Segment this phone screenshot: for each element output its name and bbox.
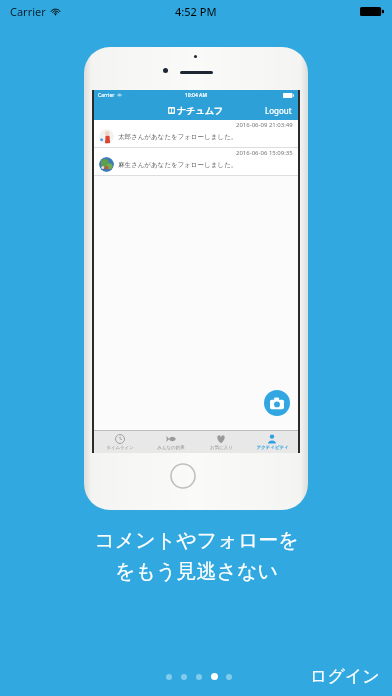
- staticText: アクティビティ: [256, 445, 289, 451]
- button[interactable]: お気に入り: [196, 433, 246, 452]
- staticText: ログイン: [310, 666, 380, 687]
- button[interactable]: Logout: [259, 102, 298, 119]
- staticText: 10:04 AM: [185, 92, 207, 99]
- staticText: 太郎さんがあなたをフォローしました。: [118, 133, 238, 141]
- staticText: をもう見逃さない: [115, 559, 278, 584]
- staticText: 2016-06-09 21:03:49: [236, 121, 293, 129]
- button[interactable]: 2016-06-06 15:09:35: [94, 148, 298, 176]
- staticText: お気に入り: [210, 445, 233, 451]
- staticText: タイムライン: [106, 445, 134, 451]
- button[interactable]: ログイン: [302, 662, 392, 691]
- button[interactable]: みんなの釣果: [146, 433, 196, 452]
- staticText: Logout: [265, 105, 292, 116]
- staticText: コメントやフォローを: [94, 528, 299, 553]
- staticText: 麻生さんがあなたをフォローしました。: [118, 161, 238, 169]
- button[interactable]: 2016-06-09 21:03:49: [94, 120, 298, 148]
- staticText: Carrier: [10, 4, 46, 19]
- staticText: ナチュムフ: [177, 105, 224, 116]
- staticText: Carrier: [98, 92, 115, 99]
- button[interactable]: アクティビティ: [247, 433, 297, 452]
- staticText: みんなの釣果: [157, 445, 185, 451]
- staticText: 4:52 PM: [175, 4, 217, 19]
- button[interactable]: タイムライン: [95, 433, 145, 452]
- staticText: 2016-06-06 15:09:35: [236, 149, 293, 157]
- button[interactable]: Camera: [264, 390, 290, 416]
